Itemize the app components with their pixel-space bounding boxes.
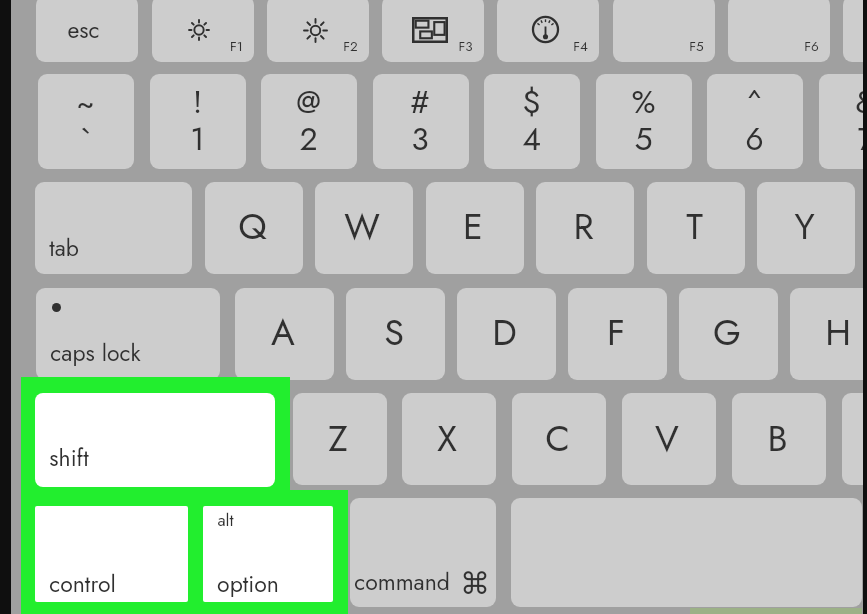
staticText: E	[463, 200, 483, 252]
staticText: alt	[217, 508, 234, 533]
button[interactable]: ! 1	[150, 74, 246, 169]
staticText: % 5	[631, 79, 656, 162]
staticText: shift	[49, 441, 89, 474]
button[interactable]: control	[35, 506, 188, 602]
staticText: H	[825, 306, 851, 358]
button[interactable]: Q	[205, 182, 303, 274]
button[interactable]: Y	[757, 182, 855, 274]
staticText: F6	[804, 37, 819, 57]
staticText: F	[607, 306, 625, 358]
button[interactable]: ~ `	[38, 74, 134, 169]
button[interactable]: N	[842, 393, 867, 485]
button[interactable]: caps lock	[36, 288, 220, 380]
button[interactable]: F3	[382, 0, 484, 62]
button[interactable]: % 5	[596, 74, 692, 169]
button[interactable]: C	[512, 393, 606, 485]
staticText: $ 4	[522, 79, 541, 162]
staticText: Y	[794, 200, 815, 252]
button[interactable]: shift	[35, 393, 275, 487]
button[interactable]: F	[568, 288, 667, 380]
staticText: T	[686, 200, 703, 252]
button[interactable]: F6	[728, 0, 830, 62]
button[interactable]: S	[346, 288, 445, 380]
staticText: F5	[689, 37, 704, 57]
staticText: V	[655, 412, 679, 464]
staticText: S	[384, 306, 404, 358]
button[interactable]: F7	[843, 0, 867, 62]
button[interactable]: R	[536, 182, 634, 274]
staticText: W	[344, 200, 380, 252]
button[interactable]: A	[235, 288, 334, 380]
button[interactable]: X	[402, 393, 496, 485]
button[interactable]: Mission Control	[412, 17, 448, 43]
staticText: B	[767, 412, 788, 464]
button[interactable]: Do Not Disturb	[531, 15, 560, 44]
button[interactable]: esc	[36, 0, 138, 62]
staticText: F1	[230, 37, 243, 57]
staticText: Z	[328, 412, 348, 464]
button[interactable]: Increase brightness	[301, 16, 330, 45]
button[interactable]: T	[647, 182, 745, 274]
staticText: R	[573, 200, 594, 252]
button[interactable]: G	[679, 288, 778, 380]
button[interactable]: Decrease brightness	[186, 17, 212, 43]
button[interactable]: $ 4	[484, 74, 580, 169]
staticText: ⌘	[460, 566, 490, 601]
button[interactable]: B	[732, 393, 826, 485]
button[interactable]: ^ 6	[707, 74, 803, 169]
button[interactable]: F5	[613, 0, 715, 62]
button[interactable]: W	[315, 182, 413, 274]
staticText: F4	[573, 37, 588, 57]
button[interactable]: # 3	[373, 74, 469, 169]
staticText: esc	[67, 13, 100, 46]
button[interactable]: D	[457, 288, 556, 380]
staticText: # 3	[410, 79, 430, 162]
staticText: ! 1	[190, 79, 205, 162]
button[interactable]: E	[426, 182, 524, 274]
button[interactable]: tab	[35, 182, 192, 274]
staticText: F3	[458, 37, 473, 57]
button[interactable]: F4	[497, 0, 599, 62]
staticText: Q	[238, 200, 267, 252]
staticText: caps lock	[50, 336, 141, 369]
staticText: tab	[49, 231, 79, 264]
button[interactable]: H	[790, 288, 867, 380]
staticText: control	[49, 567, 116, 600]
staticText: @ 2	[296, 79, 321, 162]
staticText: D	[492, 306, 517, 358]
staticText: F2	[343, 37, 358, 57]
staticText: option	[217, 567, 279, 600]
staticText: G	[713, 306, 741, 358]
staticText: C	[545, 412, 570, 464]
staticText: A	[271, 306, 295, 358]
button[interactable]: V	[622, 393, 716, 485]
staticText: ~ `	[76, 79, 95, 162]
staticText: X	[437, 412, 457, 464]
button[interactable]: option	[203, 506, 333, 602]
button[interactable]: F2	[267, 0, 369, 62]
button[interactable]: Z	[293, 393, 387, 485]
button[interactable]: @ 2	[261, 74, 357, 169]
button[interactable]: & 7	[819, 74, 867, 169]
staticText: & 7	[855, 79, 867, 162]
staticText: ^ 6	[745, 79, 764, 162]
staticText: command	[354, 565, 450, 598]
button[interactable]: F1	[152, 0, 254, 62]
button[interactable]: command	[350, 498, 496, 607]
